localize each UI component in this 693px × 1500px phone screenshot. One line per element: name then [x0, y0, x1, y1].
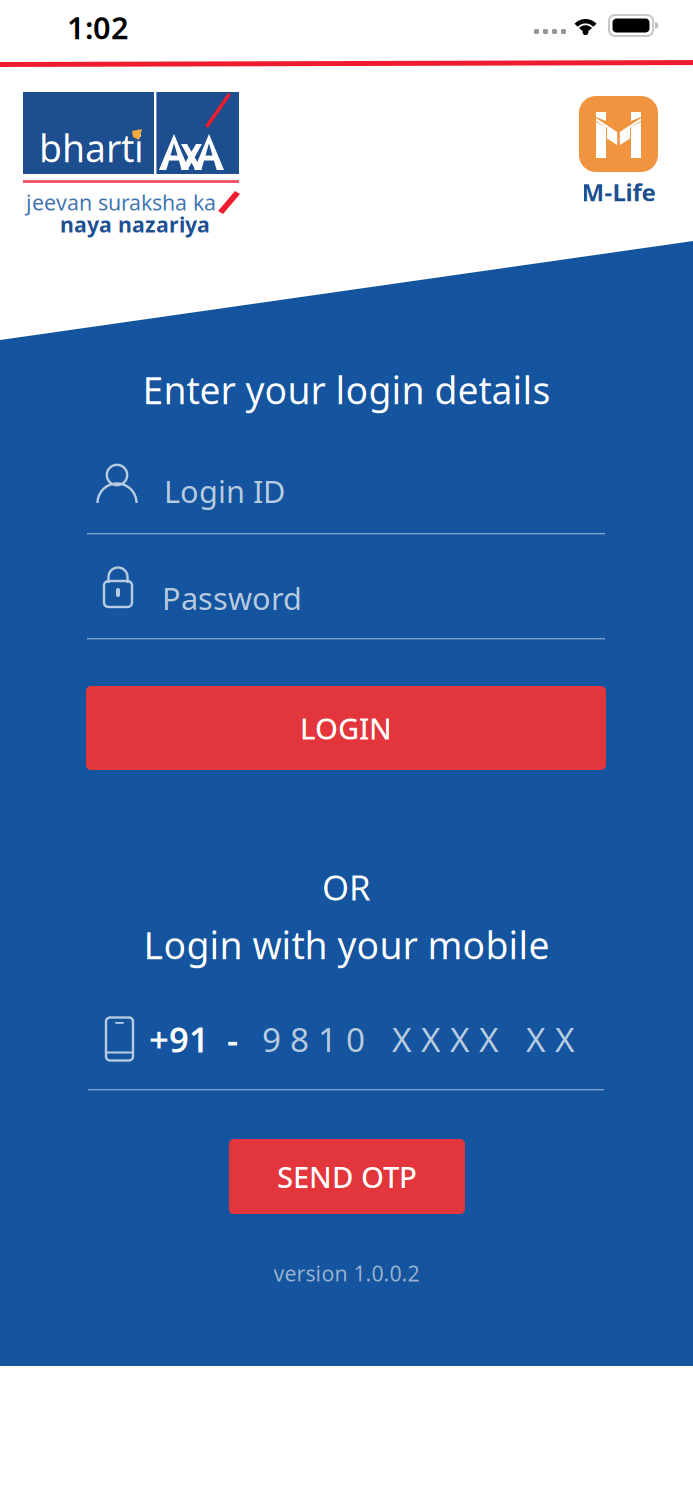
staticText: Login with your mobile [143, 920, 549, 970]
staticText: 9 8 1 0 X X X X X X [262, 1017, 575, 1061]
staticText: Login ID [164, 471, 285, 511]
staticText: LOGIN [300, 708, 392, 747]
staticText: OR [322, 864, 371, 910]
staticText: bharti [39, 123, 144, 173]
staticText: naya nazariya [60, 210, 210, 238]
staticText: Password [162, 578, 302, 618]
staticText: 1:02 [67, 7, 129, 48]
staticText: M-Life [581, 176, 655, 208]
staticText: Enter your login details [142, 365, 550, 415]
staticText: +91 - [149, 1016, 238, 1062]
staticText: jeevan suraksha ka [26, 188, 216, 216]
button[interactable]: SEND OTP [229, 1139, 465, 1214]
staticText: SEND OTP [277, 1157, 417, 1196]
button[interactable]: LOGIN [86, 686, 606, 770]
staticText: version 1.0.0.2 [273, 1259, 419, 1287]
